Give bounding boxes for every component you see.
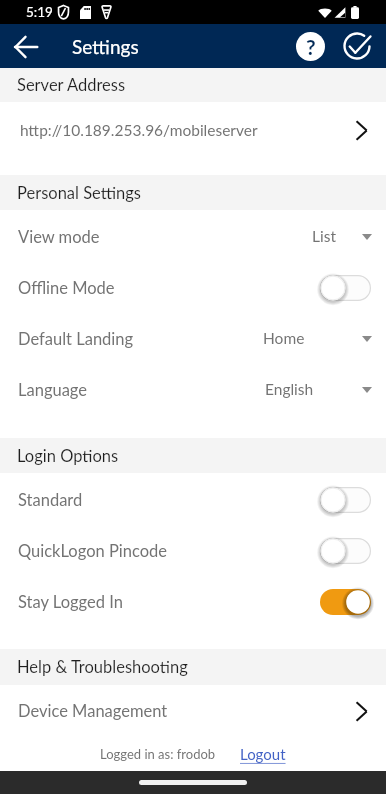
staticText: Default Landing [18, 329, 134, 349]
staticText: English [265, 380, 314, 399]
button[interactable]: Stay Logged In [0, 576, 386, 627]
staticText: Personal Settings [17, 183, 142, 203]
button[interactable]: QuickLogon Pincode [0, 525, 386, 576]
staticText: Language [18, 380, 88, 400]
staticText: Server Address [17, 75, 126, 95]
staticText: Login Options [17, 446, 119, 466]
button[interactable]: View mode [0, 211, 386, 262]
button[interactable]: Offline Mode [0, 262, 386, 313]
staticText: QuickLogon Pincode [18, 541, 320, 561]
staticText: Device Management [18, 701, 355, 721]
staticText: Logged in as: frodob [100, 746, 216, 762]
button[interactable]: Help [290, 26, 330, 66]
button[interactable]: Default Landing [0, 313, 386, 364]
staticText: http://10.189.253.96/mobileserver [20, 121, 355, 140]
button[interactable]: Language [0, 364, 386, 415]
staticText: Help & Troubleshooting [17, 657, 188, 677]
button[interactable]: Device Management [0, 685, 386, 737]
staticText: List [312, 227, 336, 246]
staticText: Logout [240, 745, 286, 763]
button[interactable]: Standard [0, 474, 386, 525]
staticText: Home [263, 329, 305, 348]
staticText: Settings [72, 35, 139, 58]
button[interactable]: Save settings [337, 26, 377, 66]
button[interactable]: http://10.189.253.96/mobileserver [0, 102, 386, 175]
staticText: Offline Mode [18, 278, 320, 298]
staticText: Standard [18, 490, 320, 510]
staticText: ? [306, 34, 316, 59]
staticText: 5:19 [26, 4, 53, 20]
staticText: View mode [18, 227, 100, 247]
button[interactable]: Logout [240, 745, 286, 763]
button[interactable]: Navigate up [5, 26, 46, 67]
staticText: Stay Logged In [18, 592, 320, 612]
